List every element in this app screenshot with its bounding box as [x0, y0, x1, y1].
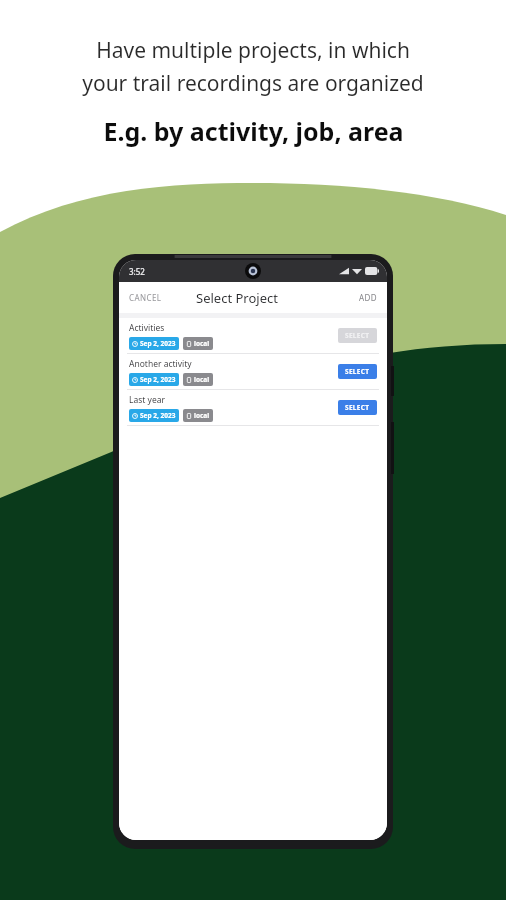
button[interactable]: Activities — [119, 318, 387, 353]
staticText: local — [194, 339, 210, 348]
staticText: SELECT — [345, 367, 370, 376]
staticText: 3:52 — [129, 266, 145, 277]
staticText: Another activity — [129, 358, 192, 370]
staticText: local — [194, 375, 210, 384]
button[interactable]: SELECT — [338, 400, 377, 415]
staticText: Select Project — [196, 289, 278, 307]
staticText: Sep 2, 2023 — [140, 375, 176, 384]
staticText: Sep 2, 2023 — [140, 339, 176, 348]
button[interactable]: SELECT — [338, 328, 377, 343]
button[interactable]: Last year — [119, 390, 387, 425]
staticText: your trail recordings are organized — [82, 69, 424, 98]
button[interactable]: SELECT — [338, 364, 377, 379]
button[interactable]: CANCEL — [119, 286, 170, 309]
staticText: Have multiple projects, in which — [96, 36, 410, 65]
staticText: E.g. by activity, job, area — [103, 114, 404, 148]
staticText: SELECT — [345, 403, 370, 412]
staticText: ADD — [359, 292, 377, 303]
staticText: local — [194, 411, 210, 420]
staticText: Activities — [129, 322, 165, 334]
staticText: SELECT — [345, 331, 370, 340]
staticText: Last year — [129, 394, 165, 406]
staticText: CANCEL — [129, 292, 162, 303]
button[interactable]: Another activity — [119, 354, 387, 389]
staticText: Sep 2, 2023 — [140, 411, 176, 420]
button[interactable]: ADD — [351, 286, 387, 309]
